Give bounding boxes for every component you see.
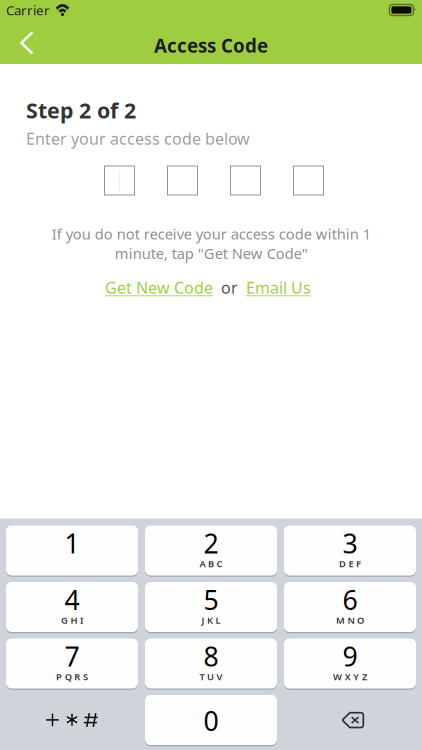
button[interactable]: 7: [6, 638, 138, 688]
staticText: JKL: [201, 614, 221, 626]
button[interactable]: 2: [145, 525, 277, 575]
button[interactable]: Access code digit: [167, 166, 197, 195]
staticText: Carrier: [6, 1, 50, 19]
staticText: 1: [64, 525, 79, 561]
staticText: MNO: [336, 614, 364, 626]
staticText: 3: [342, 525, 357, 561]
button[interactable]: 1: [6, 525, 138, 575]
staticText: or: [213, 277, 246, 298]
staticText: Enter your access code below: [26, 128, 250, 149]
staticText: 8: [203, 638, 218, 674]
button[interactable]: 0: [145, 695, 277, 745]
button[interactable]: 3: [284, 525, 416, 575]
staticText: TUV: [199, 670, 223, 683]
staticText: PQRS: [56, 670, 88, 683]
staticText: If you do not receive your access code w…: [51, 224, 370, 263]
staticText: 5: [203, 582, 218, 617]
staticText: WXYZ: [333, 670, 367, 683]
button[interactable]: Access code digit: [293, 166, 323, 195]
button[interactable]: Access code digit: [104, 166, 134, 195]
button[interactable]: Get New Code: [105, 277, 213, 298]
staticText: 4: [64, 582, 79, 617]
button[interactable]: Access code digit: [230, 166, 260, 195]
staticText: Access Code: [154, 33, 268, 58]
button[interactable]: Symbols: [6, 695, 138, 745]
staticText: Email Us: [246, 277, 311, 298]
button[interactable]: Back: [7, 23, 47, 63]
button[interactable]: Email Us: [246, 277, 311, 298]
staticText: 9: [342, 638, 357, 674]
staticText: 2: [203, 525, 218, 561]
button[interactable]: Delete: [284, 695, 416, 745]
staticText: Get New Code: [105, 277, 213, 298]
button[interactable]: 6: [284, 582, 416, 632]
button[interactable]: 5: [145, 582, 277, 632]
button[interactable]: 4: [6, 582, 138, 632]
staticText: DEF: [339, 557, 361, 570]
staticText: 0: [203, 703, 218, 738]
staticText: 6: [342, 582, 357, 617]
staticText: ABC: [199, 557, 223, 570]
staticText: 7: [64, 638, 79, 674]
button[interactable]: 8: [145, 638, 277, 688]
staticText: Step 2 of 2: [26, 96, 136, 124]
button[interactable]: 9: [284, 638, 416, 688]
staticText: GHI: [61, 614, 83, 626]
